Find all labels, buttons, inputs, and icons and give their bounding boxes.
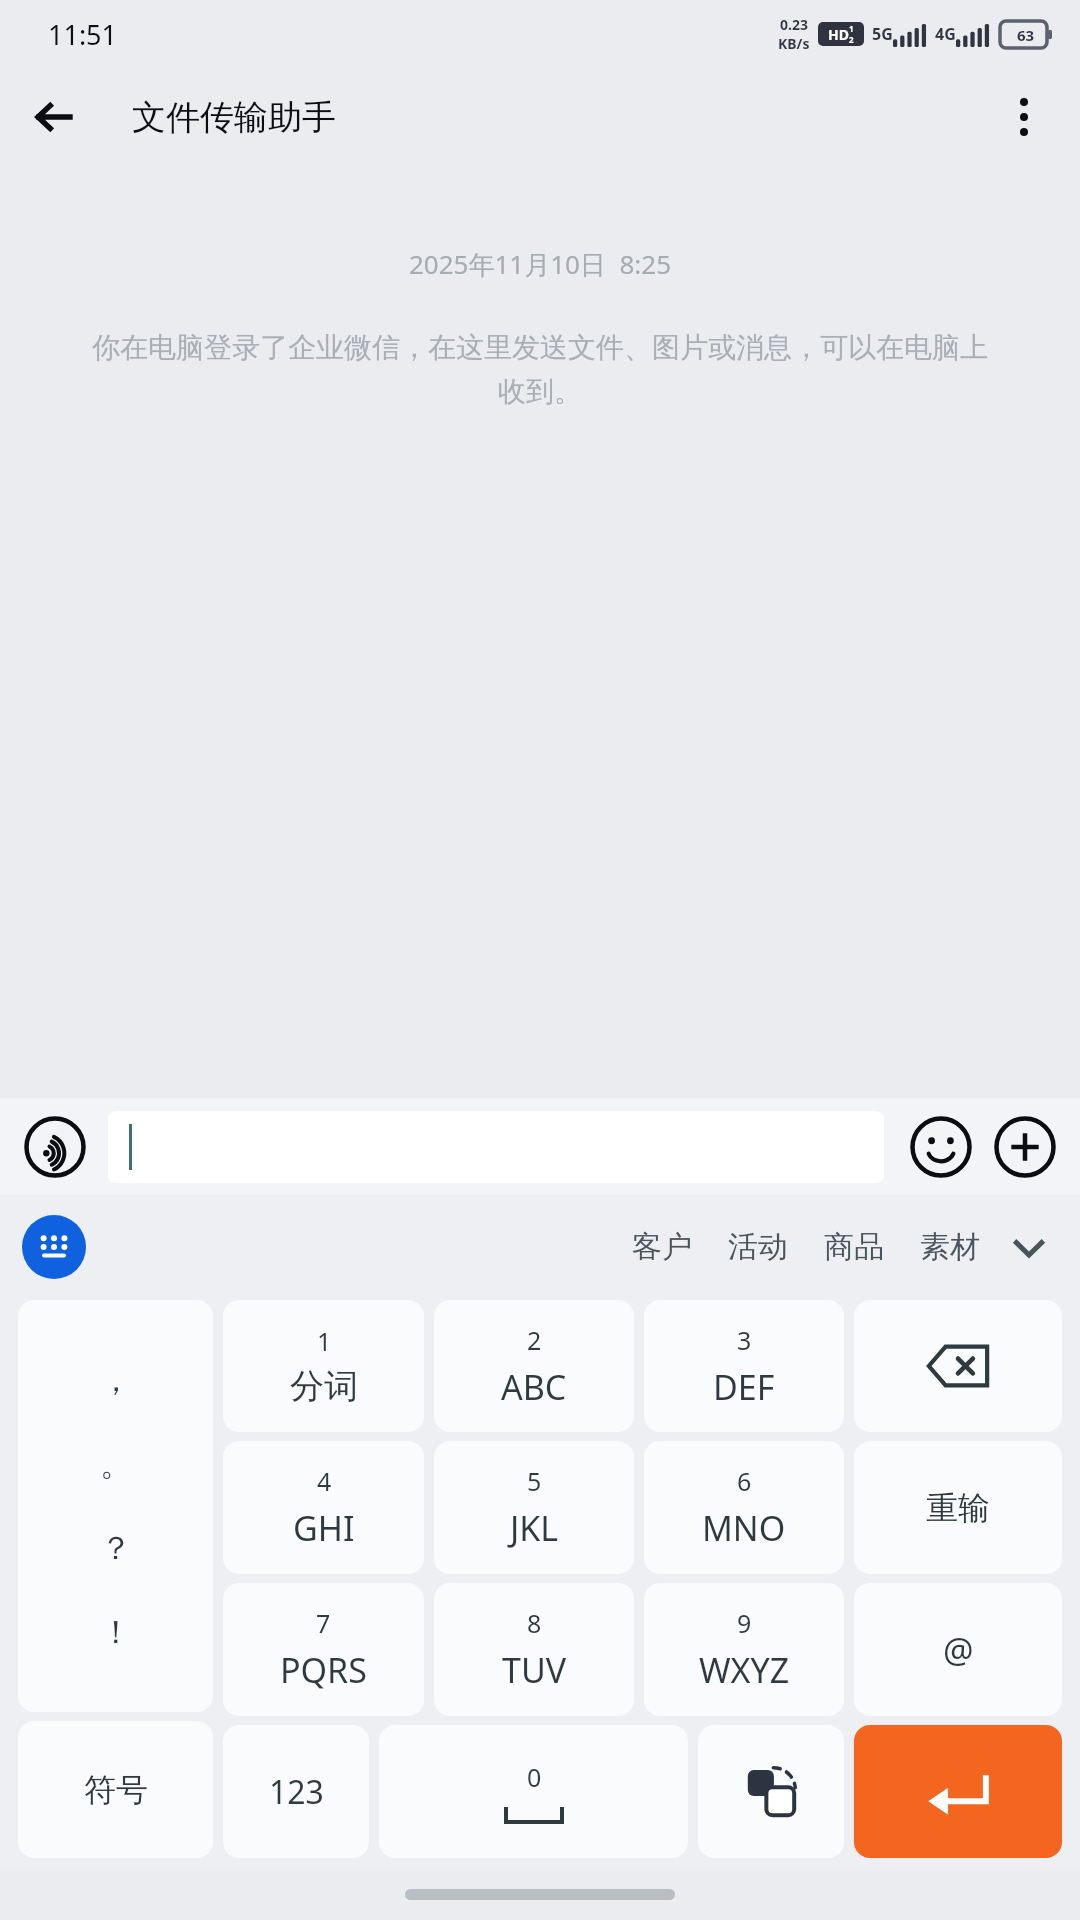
button[interactable]: 素材 — [902, 1218, 998, 1276]
button[interactable]: 3 — [644, 1300, 844, 1432]
staticText: 6 — [737, 1464, 752, 1498]
staticText: 123 — [269, 1770, 324, 1814]
button[interactable]: 1 — [223, 1300, 424, 1432]
staticText: 商品 — [824, 1228, 884, 1266]
staticText: KB/s — [778, 34, 810, 53]
button[interactable]: Add attachment — [992, 1114, 1058, 1180]
staticText: 5 — [527, 1464, 542, 1498]
button[interactable]: 重输 — [854, 1441, 1062, 1574]
button[interactable]: Backspace — [854, 1300, 1062, 1432]
staticText: 8 — [527, 1606, 542, 1640]
button[interactable]: 9 — [644, 1583, 844, 1716]
staticText: ？ — [100, 1528, 132, 1568]
button[interactable]: 2 — [434, 1300, 634, 1432]
staticText: 重输 — [926, 1488, 990, 1528]
staticText: 4 — [317, 1464, 332, 1498]
button[interactable]: 活动 — [710, 1218, 806, 1276]
staticText: MNO — [702, 1505, 786, 1551]
staticText: 63 — [1017, 25, 1035, 45]
button[interactable]: 7 — [223, 1583, 424, 1716]
staticText: GHI — [293, 1505, 355, 1551]
staticText: 1 — [317, 1324, 332, 1358]
staticText: @ — [943, 1627, 974, 1673]
staticText: WXYZ — [699, 1647, 790, 1693]
staticText: 素材 — [920, 1228, 980, 1266]
staticText: 0.23 — [780, 15, 808, 34]
staticText: ABC — [501, 1364, 567, 1410]
button[interactable]: ， — [18, 1300, 213, 1712]
button[interactable] — [108, 1111, 884, 1183]
button[interactable]: 4 — [223, 1441, 424, 1574]
staticText: ， — [100, 1360, 132, 1400]
staticText: 1 — [849, 23, 854, 34]
button[interactable]: 6 — [644, 1441, 844, 1574]
staticText: 客户 — [632, 1228, 692, 1266]
staticText: 2 — [849, 34, 854, 45]
staticText: HD — [828, 25, 849, 44]
button[interactable]: 0 — [379, 1725, 688, 1858]
button[interactable]: 客户 — [614, 1218, 710, 1276]
button[interactable]: Back — [18, 81, 90, 153]
staticText: 文件传输助手 — [132, 96, 336, 139]
staticText: DEF — [713, 1364, 775, 1410]
button[interactable]: 123 — [223, 1725, 369, 1858]
staticText: 4G — [935, 23, 956, 45]
staticText: PQRS — [280, 1647, 367, 1693]
staticText: 。 — [100, 1444, 132, 1484]
staticText: 符号 — [84, 1770, 148, 1810]
staticText: 你在电脑登录了企业微信，在这里发送文件、图片或消息，可以在电脑上收到。 — [92, 330, 988, 409]
staticText: 0 — [527, 1760, 542, 1794]
staticText: 2025年11月10日 8:25 — [409, 246, 672, 282]
staticText: 11:51 — [48, 16, 118, 53]
button[interactable]: More options — [988, 81, 1060, 153]
button[interactable]: Voice input — [22, 1114, 88, 1180]
button[interactable]: Switch language — [698, 1725, 844, 1858]
staticText: TUV — [502, 1647, 567, 1693]
staticText: 5G — [872, 23, 893, 45]
staticText: 7 — [316, 1606, 331, 1640]
staticText: 分词 — [290, 1365, 358, 1408]
button[interactable]: Emoji — [908, 1114, 974, 1180]
button[interactable]: 商品 — [806, 1218, 902, 1276]
staticText: 9 — [737, 1606, 752, 1640]
button[interactable]: 5 — [434, 1441, 634, 1574]
staticText: 3 — [737, 1323, 752, 1357]
button[interactable]: 符号 — [18, 1721, 213, 1858]
button[interactable]: @ — [854, 1583, 1062, 1716]
button[interactable]: Keyboard switch — [22, 1215, 86, 1279]
staticText: ！ — [100, 1612, 132, 1652]
button[interactable]: Enter — [854, 1725, 1062, 1858]
button[interactable]: 8 — [434, 1583, 634, 1716]
staticText: 活动 — [728, 1228, 788, 1266]
button[interactable]: Collapse — [998, 1216, 1060, 1278]
staticText: 2 — [527, 1323, 542, 1357]
staticText: JKL — [510, 1505, 559, 1551]
